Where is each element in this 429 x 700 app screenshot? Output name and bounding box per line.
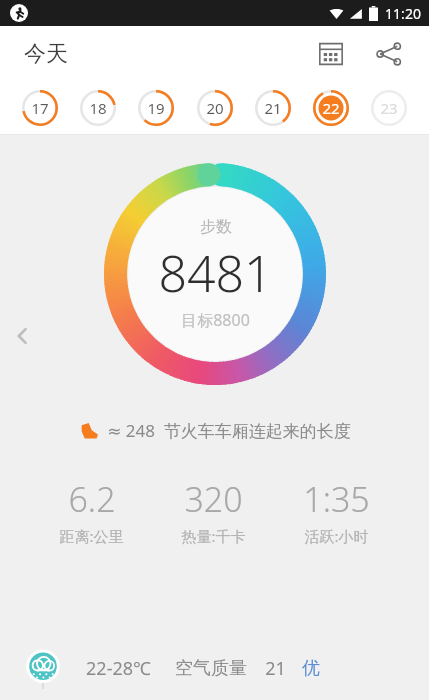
staticText: 热量:千卡: [181, 526, 246, 546]
staticText: 步数: [200, 217, 232, 237]
staticText: 18: [89, 98, 107, 118]
button[interactable]: Previous day: [0, 314, 44, 358]
staticText: 1:35: [303, 476, 370, 522]
staticText: 22: [322, 98, 340, 118]
staticText: 20: [206, 98, 224, 118]
staticText: 6.2: [68, 476, 116, 522]
button[interactable]: 今天: [24, 40, 68, 68]
staticText: 8481: [158, 239, 273, 307]
staticText: 320: [184, 476, 243, 522]
staticText: ≈ 248 节火车车厢连起来的长度: [107, 419, 351, 442]
staticText: 21: [264, 98, 282, 118]
button[interactable]: 19: [132, 84, 180, 132]
button[interactable]: 1:35: [295, 476, 378, 546]
button[interactable]: 22-28℃: [0, 636, 429, 700]
staticText: 19: [147, 98, 165, 118]
staticText: 目标8800: [181, 309, 250, 331]
staticText: 今天: [24, 40, 68, 68]
button[interactable]: 320: [173, 476, 254, 546]
button[interactable]: 6.2: [51, 476, 132, 546]
staticText: 23: [380, 98, 398, 118]
staticText: 距离:公里: [59, 526, 124, 546]
button[interactable]: 17: [16, 84, 64, 132]
button[interactable]: 20: [191, 84, 239, 132]
button[interactable]: Share: [367, 32, 411, 76]
staticText: 11:20: [385, 4, 421, 23]
staticText: 17: [31, 98, 49, 118]
staticText: 21: [265, 656, 286, 681]
staticText: 活跃:小时: [304, 526, 369, 546]
button[interactable]: 23: [365, 84, 413, 132]
staticText: 空气质量: [175, 657, 247, 680]
staticText: 22-28℃: [86, 656, 151, 681]
button[interactable]: 21: [249, 84, 297, 132]
button[interactable]: 22: [307, 84, 355, 132]
button[interactable]: Calendar: [309, 32, 353, 76]
button[interactable]: 18: [74, 84, 122, 132]
staticText: 优: [302, 657, 320, 680]
